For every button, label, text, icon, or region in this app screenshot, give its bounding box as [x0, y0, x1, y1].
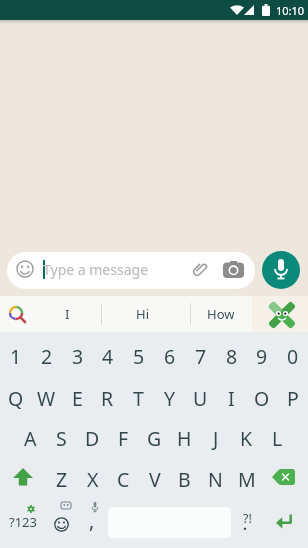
button[interactable]: N	[200, 459, 231, 500]
staticText: R	[101, 385, 114, 412]
staticText: L	[272, 425, 283, 452]
staticText: N	[208, 466, 223, 493]
button[interactable]: Y	[154, 378, 185, 419]
staticText: O	[254, 385, 270, 412]
staticText: H	[177, 425, 192, 452]
button[interactable]: 6	[154, 336, 185, 377]
button[interactable]: Z	[46, 459, 77, 500]
button[interactable]	[46, 499, 77, 540]
button[interactable]	[231, 499, 262, 540]
staticText: C	[117, 466, 130, 493]
button[interactable]: 2	[31, 336, 62, 377]
button[interactable]	[0, 296, 40, 332]
staticText: 3	[72, 343, 84, 370]
button[interactable]	[262, 499, 308, 540]
staticText: I	[228, 385, 235, 412]
staticText: 8	[226, 343, 238, 370]
button[interactable]: H	[169, 418, 200, 459]
button[interactable]: R	[92, 378, 123, 419]
staticText: V	[149, 466, 161, 493]
button[interactable]: Hi	[102, 296, 182, 332]
button[interactable]: G	[139, 418, 170, 459]
button[interactable]: S	[46, 418, 77, 459]
button[interactable]: 7	[185, 336, 216, 377]
staticText: How	[207, 305, 235, 323]
staticText: .	[243, 515, 247, 534]
button[interactable]: I	[216, 378, 247, 419]
button[interactable]: 9	[246, 336, 277, 377]
button[interactable]: 0	[277, 336, 308, 377]
button[interactable]: How	[191, 296, 251, 332]
button[interactable]: M	[231, 459, 262, 500]
button[interactable]: P	[277, 378, 308, 419]
button[interactable]: Q	[0, 378, 31, 419]
button[interactable]: C	[108, 459, 139, 500]
staticText: G	[147, 425, 162, 452]
button[interactable]: T	[123, 378, 154, 419]
button[interactable]	[252, 296, 308, 332]
button[interactable]	[262, 458, 308, 499]
button[interactable]: B	[169, 459, 200, 500]
staticText: I	[65, 305, 70, 323]
staticText: W	[37, 385, 56, 412]
staticText: F	[118, 425, 129, 452]
button[interactable]: E	[62, 378, 93, 419]
staticText: D	[85, 425, 100, 452]
staticText: Q	[8, 385, 24, 412]
staticText: A	[24, 425, 37, 452]
button[interactable]: L	[262, 418, 293, 459]
button[interactable]	[0, 458, 46, 499]
staticText: ?!	[243, 510, 252, 527]
button[interactable]: U	[185, 378, 216, 419]
staticText: K	[240, 425, 253, 452]
staticText: 10:10	[276, 3, 305, 18]
staticText: 6	[164, 343, 176, 370]
staticText: Y	[164, 385, 176, 412]
button[interactable]: 4	[92, 336, 123, 377]
button[interactable]: O	[246, 378, 277, 419]
button[interactable]: W	[31, 378, 62, 419]
button[interactable]	[262, 251, 300, 289]
button[interactable]: V	[139, 459, 170, 500]
staticText: 4	[102, 343, 114, 370]
button[interactable]: X	[77, 459, 108, 500]
staticText: 9	[256, 343, 268, 370]
staticText: 2	[41, 343, 53, 370]
button[interactable]: 3	[62, 336, 93, 377]
staticText: ?123	[9, 513, 37, 531]
staticText: B	[178, 466, 191, 493]
staticText: U	[193, 385, 208, 412]
button[interactable]: 5	[123, 336, 154, 377]
staticText: J	[213, 425, 219, 452]
button[interactable]	[0, 499, 46, 540]
staticText: T	[133, 385, 144, 412]
button[interactable]: D	[77, 418, 108, 459]
button[interactable]	[7, 252, 255, 289]
button[interactable]: F	[108, 418, 139, 459]
staticText: Hi	[136, 305, 149, 323]
button[interactable]: 1	[0, 336, 31, 377]
staticText: M	[238, 466, 256, 493]
staticText: 0	[287, 343, 299, 370]
staticText: 5	[133, 343, 145, 370]
staticText: Z	[56, 466, 68, 493]
staticText: ,	[89, 507, 95, 533]
staticText: P	[287, 385, 299, 412]
staticText: Type a message	[43, 260, 149, 279]
button[interactable]: A	[15, 418, 46, 459]
button[interactable]: J	[200, 418, 231, 459]
staticText: 7	[195, 343, 207, 370]
button[interactable]: I	[40, 296, 94, 332]
staticText: X	[87, 466, 99, 493]
button[interactable]	[77, 499, 108, 540]
button[interactable]: K	[231, 418, 262, 459]
staticText: E	[72, 385, 83, 412]
staticText: 1	[10, 343, 22, 370]
staticText: S	[56, 425, 67, 452]
button[interactable]: 8	[216, 336, 247, 377]
